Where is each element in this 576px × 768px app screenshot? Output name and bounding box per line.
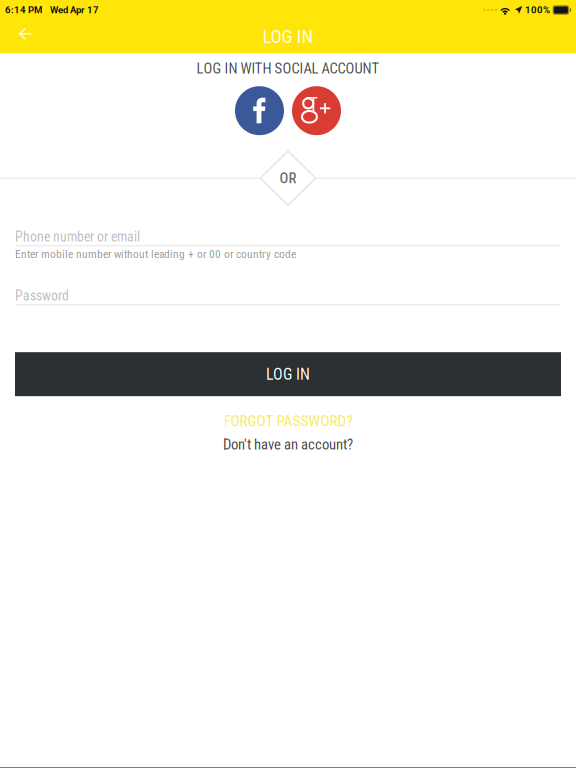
button[interactable]: Don't have an account? — [223, 436, 353, 453]
staticText: Enter mobile number without leading + or… — [15, 247, 296, 261]
staticText: FORGOT PASSWORD? — [223, 412, 352, 430]
staticText: OR — [279, 170, 296, 187]
button[interactable]: Log in with Facebook — [235, 86, 284, 135]
staticText: LOG IN — [262, 26, 313, 47]
button[interactable]: LOG IN — [15, 352, 561, 396]
staticText: Password — [15, 288, 69, 304]
staticText: 6:14 PM — [5, 4, 42, 16]
staticText: Wed Apr 17 — [50, 4, 99, 16]
staticText: Phone number or email — [15, 229, 140, 245]
button[interactable]: Log in with Google Plus — [292, 86, 341, 135]
button[interactable]: FORGOT PASSWORD? — [223, 412, 352, 430]
staticText: LOG IN WITH SOCIAL ACCOUNT — [196, 60, 379, 77]
staticText: Don't have an account? — [223, 436, 353, 453]
staticText: 100% — [525, 4, 550, 16]
staticText: LOG IN — [266, 365, 310, 384]
button[interactable]: Back — [0, 20, 50, 53]
